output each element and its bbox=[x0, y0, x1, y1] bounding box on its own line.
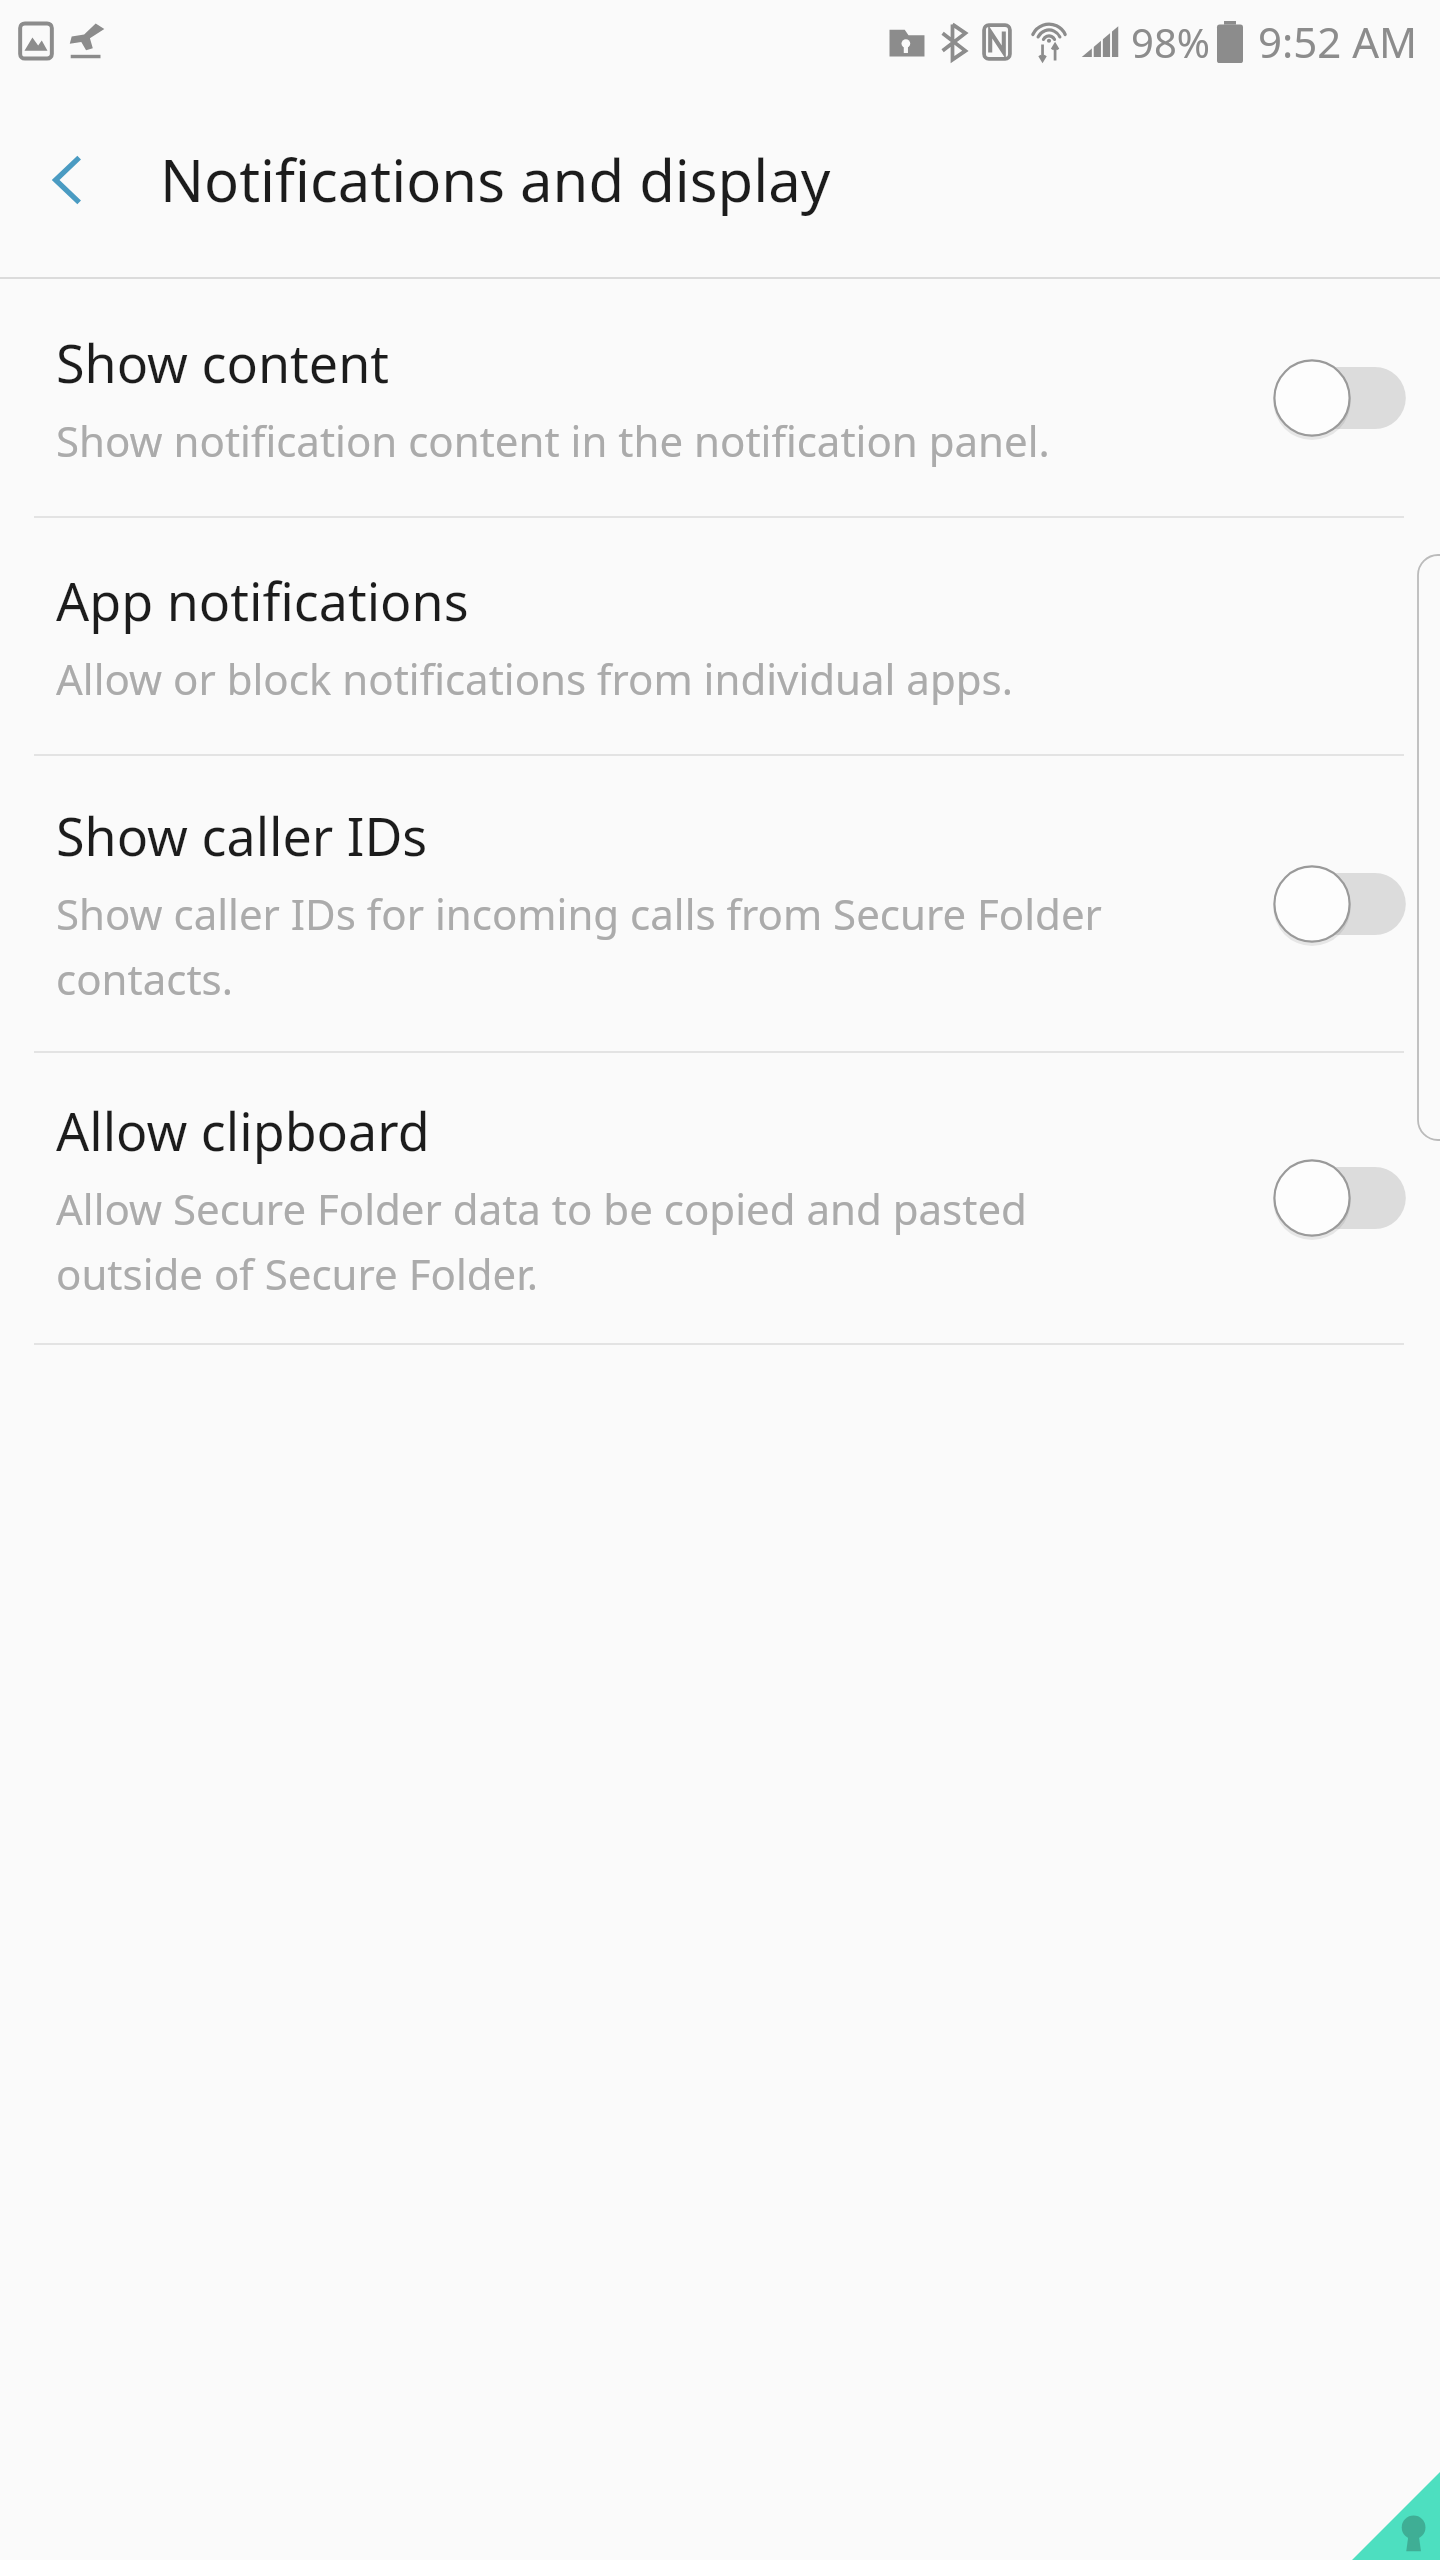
staticText: Show notification content in the notific… bbox=[56, 412, 1050, 469]
staticText: 98% bbox=[1131, 15, 1210, 69]
staticText: Allow or block notifications from indivi… bbox=[56, 650, 1013, 707]
staticText: 9:52 AM bbox=[1258, 13, 1418, 70]
button[interactable]: Show caller IDs bbox=[0, 756, 1440, 1051]
staticText: outside of Secure Folder. bbox=[56, 1245, 539, 1302]
button[interactable]: Allow clipboard bbox=[0, 1053, 1440, 1343]
staticText: Allow clipboard bbox=[56, 1095, 430, 1166]
button[interactable]: Show content bbox=[0, 279, 1440, 516]
staticText: App notifications bbox=[56, 565, 469, 636]
staticText: contacts. bbox=[56, 950, 233, 1007]
staticText: Allow Secure Folder data to be copied an… bbox=[56, 1180, 1027, 1237]
button[interactable]: Toggle bbox=[1270, 351, 1410, 445]
button[interactable]: Toggle bbox=[1270, 1151, 1410, 1245]
staticText: Show caller IDs for incoming calls from … bbox=[56, 885, 1102, 942]
staticText: Show caller IDs bbox=[56, 800, 428, 871]
button[interactable]: Secure Folder bbox=[1352, 2472, 1440, 2560]
staticText: Notifications and display bbox=[160, 140, 831, 219]
staticText: Show content bbox=[56, 327, 390, 398]
button[interactable]: Toggle bbox=[1270, 857, 1410, 951]
button[interactable]: App notifications bbox=[0, 518, 1440, 754]
button[interactable]: Back bbox=[16, 128, 120, 232]
